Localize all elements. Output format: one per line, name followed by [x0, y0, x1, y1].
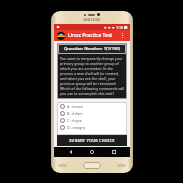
button[interactable]: C. chgrp	[60, 118, 124, 123]
button[interactable]: A. chown	[60, 104, 124, 109]
button[interactable]: D. newgrp	[60, 125, 124, 130]
staticText: A. chown	[67, 104, 84, 109]
staticText: You want to temporarily change your prim…	[60, 56, 124, 96]
button[interactable]: B. chfam	[60, 111, 124, 116]
staticText: SUBMIT YOUR CHOICE	[69, 138, 115, 143]
staticText: D. newgrp	[67, 125, 86, 130]
button[interactable]: More options	[118, 31, 127, 40]
staticText: Linux Practice Test	[68, 32, 113, 39]
button[interactable]: Home	[87, 147, 97, 157]
staticText: C. chgrp	[67, 118, 82, 123]
staticText: Question Number: 1(1/150)	[64, 46, 121, 52]
staticText: 1:15	[116, 25, 123, 30]
button[interactable]: Back	[66, 147, 76, 157]
button[interactable]: Recent apps	[109, 147, 119, 157]
button[interactable]: Home	[83, 162, 101, 169]
staticText: B. chfam	[67, 111, 83, 116]
staticText: SAMSUNG	[83, 18, 101, 22]
button[interactable]: SUBMIT YOUR CHOICE	[57, 135, 127, 146]
